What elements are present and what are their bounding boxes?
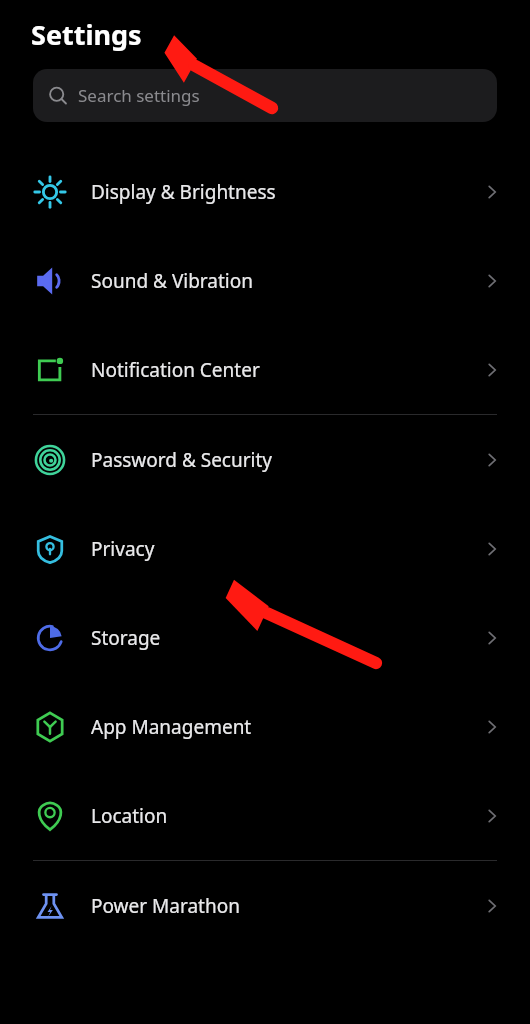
- button[interactable]: Search settings: [33, 69, 497, 122]
- staticText: Password & Security: [91, 447, 482, 473]
- staticText: Settings: [31, 16, 142, 53]
- staticText: Privacy: [91, 536, 482, 562]
- button[interactable]: Notification Center: [0, 325, 530, 414]
- button[interactable]: Power Marathon: [0, 861, 530, 950]
- button[interactable]: Display & Brightness: [0, 147, 530, 236]
- staticText: Notification Center: [91, 357, 482, 383]
- staticText: Power Marathon: [91, 893, 482, 919]
- button[interactable]: Storage: [0, 593, 530, 682]
- staticText: Sound & Vibration: [91, 268, 482, 294]
- button[interactable]: App Management: [0, 682, 530, 771]
- button[interactable]: Privacy: [0, 504, 530, 593]
- button[interactable]: Sound & Vibration: [0, 236, 530, 325]
- staticText: Location: [91, 803, 482, 829]
- staticText: Storage: [91, 625, 482, 651]
- staticText: Display & Brightness: [91, 179, 482, 205]
- button[interactable]: Location: [0, 771, 530, 860]
- staticText: Search settings: [78, 84, 200, 107]
- button[interactable]: Password & Security: [0, 415, 530, 504]
- staticText: App Management: [91, 714, 482, 740]
